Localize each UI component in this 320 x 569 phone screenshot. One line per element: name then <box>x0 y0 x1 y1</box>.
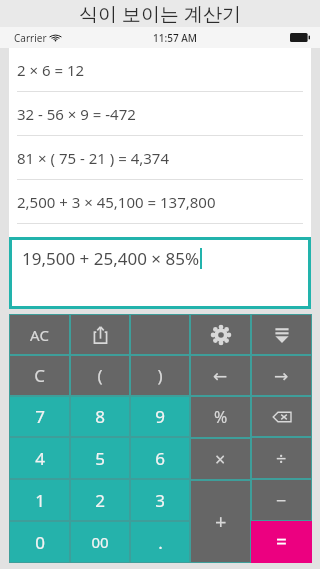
staticText: 8 <box>95 405 105 428</box>
button[interactable]: 2 × 6 = 12 <box>9 48 311 92</box>
staticText: 2,500 + 3 × 45,100 = 137,800 <box>17 192 216 212</box>
staticText: ( <box>97 364 103 387</box>
staticText: 32 - 56 × 9 = -472 <box>17 104 136 124</box>
staticText: C <box>34 364 45 387</box>
staticText: 81 × ( 75 - 21 ) = 4,374 <box>17 148 170 168</box>
button[interactable]: = <box>251 521 312 563</box>
button[interactable]: 5 <box>70 437 130 479</box>
button[interactable]: 2,500 + 3 × 45,100 = 137,800 <box>9 180 311 224</box>
button[interactable] <box>130 314 190 355</box>
button[interactable]: → <box>251 355 312 396</box>
button[interactable]: . <box>130 521 190 563</box>
staticText: → <box>274 366 289 386</box>
staticText: 4 <box>35 447 45 470</box>
staticText: 11:57 AM <box>153 31 197 45</box>
button[interactable]: 32 - 56 × 9 = -472 <box>9 92 311 136</box>
button[interactable]: 8 <box>70 396 130 437</box>
button[interactable]: 1 <box>9 479 70 521</box>
button[interactable]: 9 <box>130 396 190 437</box>
staticText: 19,500 + 25,400 × 85% <box>22 247 200 270</box>
button[interactable]: 7 <box>9 396 70 437</box>
staticText: − <box>276 488 287 513</box>
button[interactable]: − <box>251 479 312 521</box>
button[interactable]: + <box>190 480 251 563</box>
staticText: . <box>158 531 163 554</box>
button[interactable]: ) <box>130 355 190 396</box>
button[interactable]: Settings <box>190 314 251 355</box>
button[interactable]: × <box>190 438 251 480</box>
button[interactable]: 2 <box>70 479 130 521</box>
staticText: % <box>214 406 228 428</box>
staticText: × <box>215 447 226 472</box>
staticText: Carrier <box>14 31 47 45</box>
staticText: 0 <box>35 531 45 554</box>
staticText: 6 <box>155 447 165 470</box>
button[interactable]: 00 <box>70 521 130 563</box>
button[interactable]: 81 × ( 75 - 21 ) = 4,374 <box>9 136 311 180</box>
staticText: = <box>276 529 287 555</box>
button[interactable]: 4 <box>9 437 70 479</box>
staticText: 1 <box>35 489 45 512</box>
button[interactable]: 19,500 + 25,400 × 85% <box>12 240 308 306</box>
button[interactable]: Backspace <box>251 396 312 437</box>
staticText: ÷ <box>276 446 287 471</box>
button[interactable]: AC <box>9 314 70 355</box>
button[interactable]: 3 <box>130 479 190 521</box>
staticText: 9 <box>155 405 165 428</box>
staticText: 5 <box>95 447 105 470</box>
staticText: 식이 보이는 계산기 <box>79 1 241 27</box>
staticText: 2 <box>95 489 105 512</box>
button[interactable]: ÷ <box>251 437 312 479</box>
staticText: ← <box>213 366 228 386</box>
staticText: ) <box>157 364 163 387</box>
button[interactable]: % <box>190 396 251 438</box>
staticText: 7 <box>35 405 45 428</box>
button[interactable]: ( <box>70 355 130 396</box>
button[interactable]: 0 <box>9 521 70 563</box>
staticText: + <box>215 508 227 535</box>
button[interactable]: 6 <box>130 437 190 479</box>
button[interactable]: Collapse keypad <box>251 314 312 355</box>
staticText: AC <box>30 325 49 345</box>
staticText: 2 × 6 = 12 <box>17 60 85 80</box>
staticText: 00 <box>91 532 109 552</box>
button[interactable]: C <box>9 355 70 396</box>
button[interactable]: ← <box>190 355 251 396</box>
staticText: 3 <box>155 489 165 512</box>
button[interactable]: Share <box>70 314 130 355</box>
